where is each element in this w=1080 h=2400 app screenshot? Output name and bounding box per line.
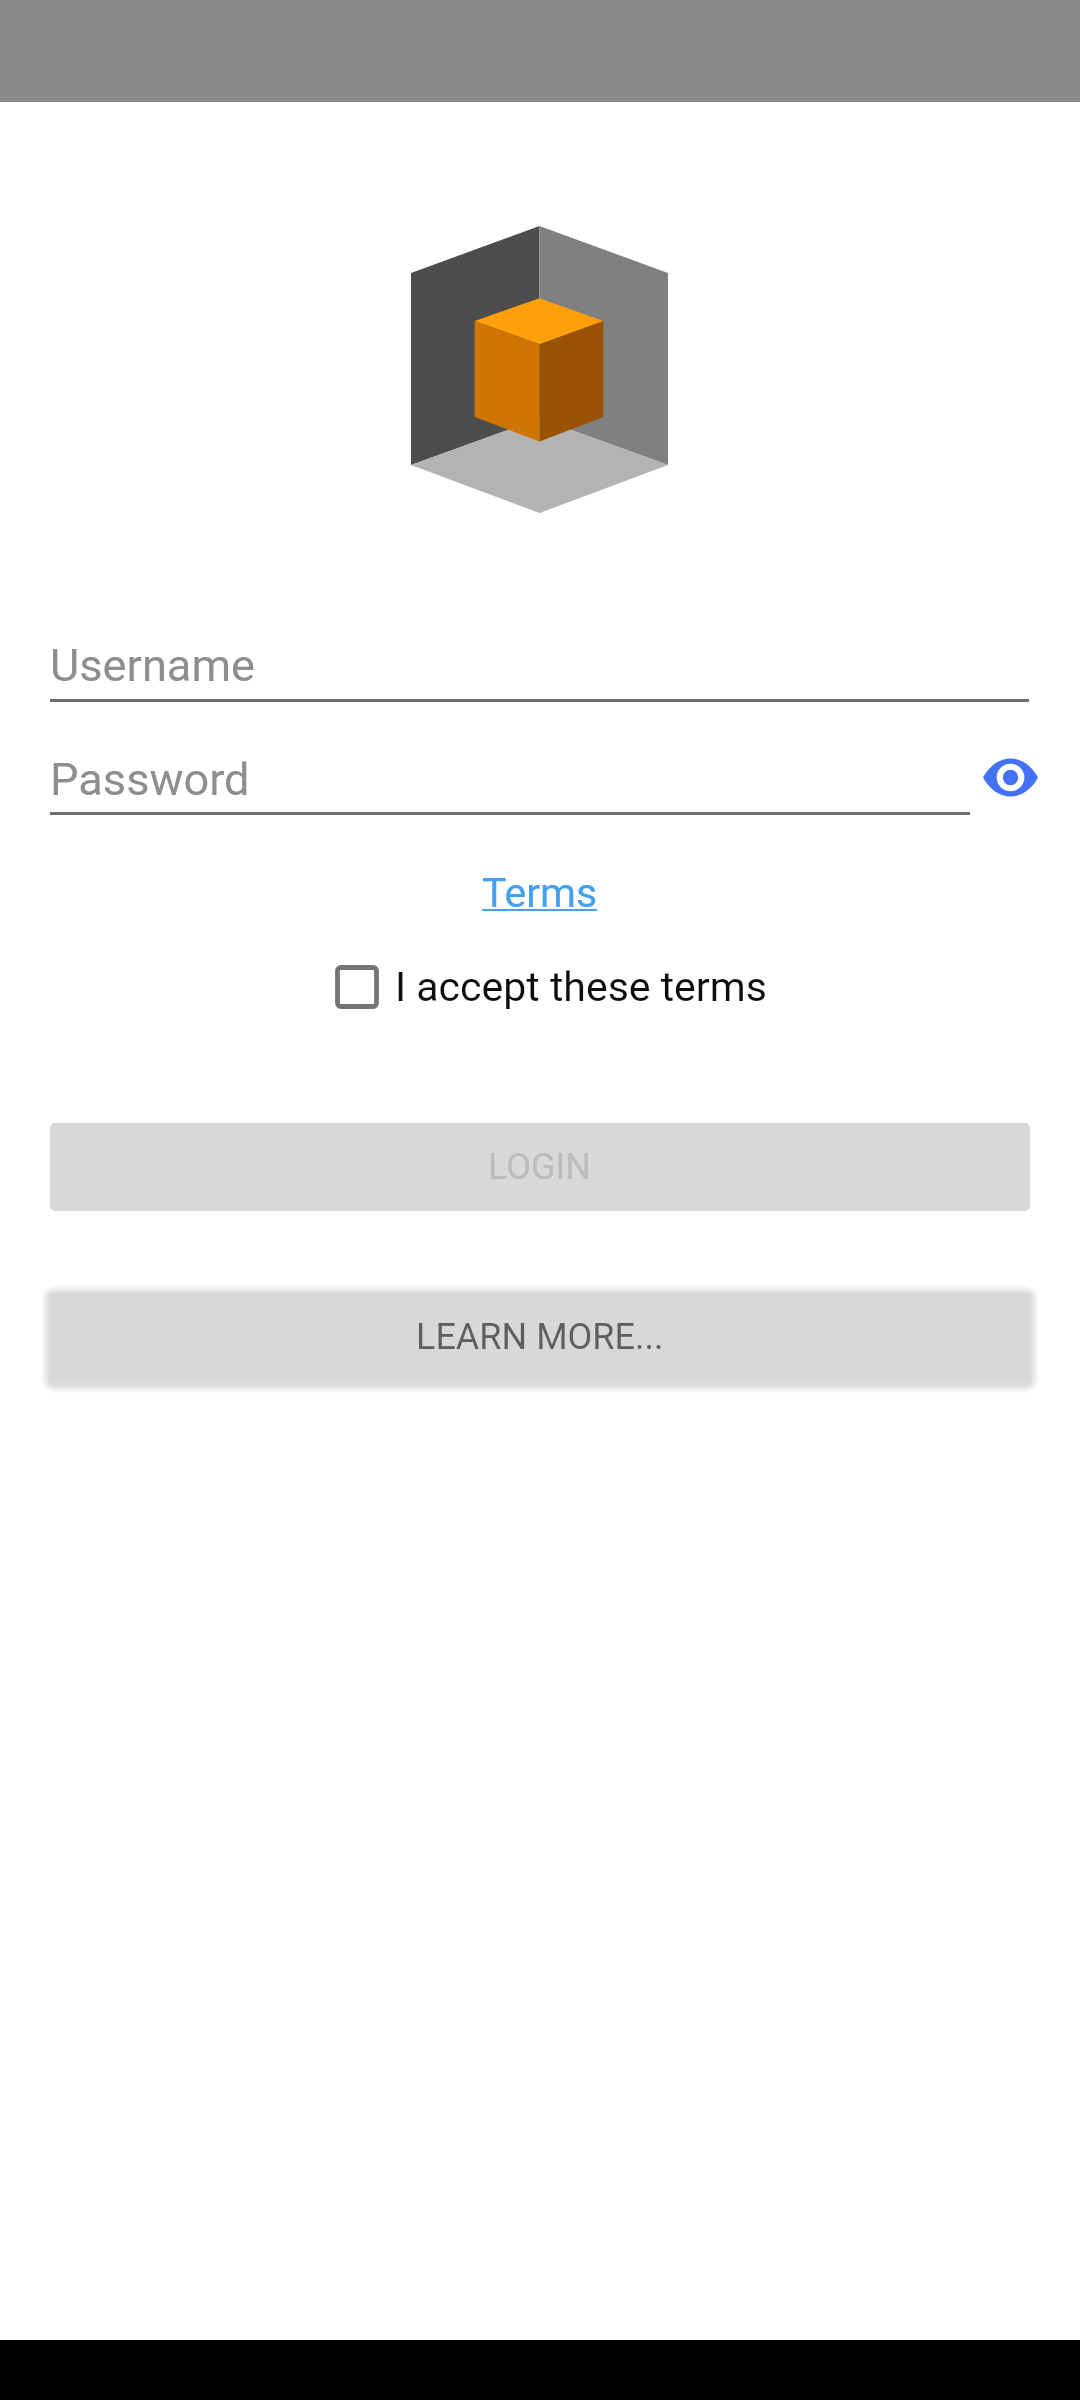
button[interactable]: Password xyxy=(50,753,950,815)
staticText: Username xyxy=(50,639,256,692)
staticText: Terms xyxy=(482,869,598,917)
button[interactable]: I accept these terms xyxy=(329,958,771,1016)
staticText: Password xyxy=(50,753,250,806)
button[interactable]: Username xyxy=(50,639,1029,701)
staticText: LOGIN xyxy=(488,1146,592,1188)
staticText: I accept these terms xyxy=(395,963,767,1011)
button[interactable]: LEARN MORE... xyxy=(50,1292,1030,1382)
button[interactable]: Terms xyxy=(476,866,604,920)
button[interactable]: Show password xyxy=(972,742,1048,812)
staticText: LEARN MORE... xyxy=(416,1316,664,1358)
